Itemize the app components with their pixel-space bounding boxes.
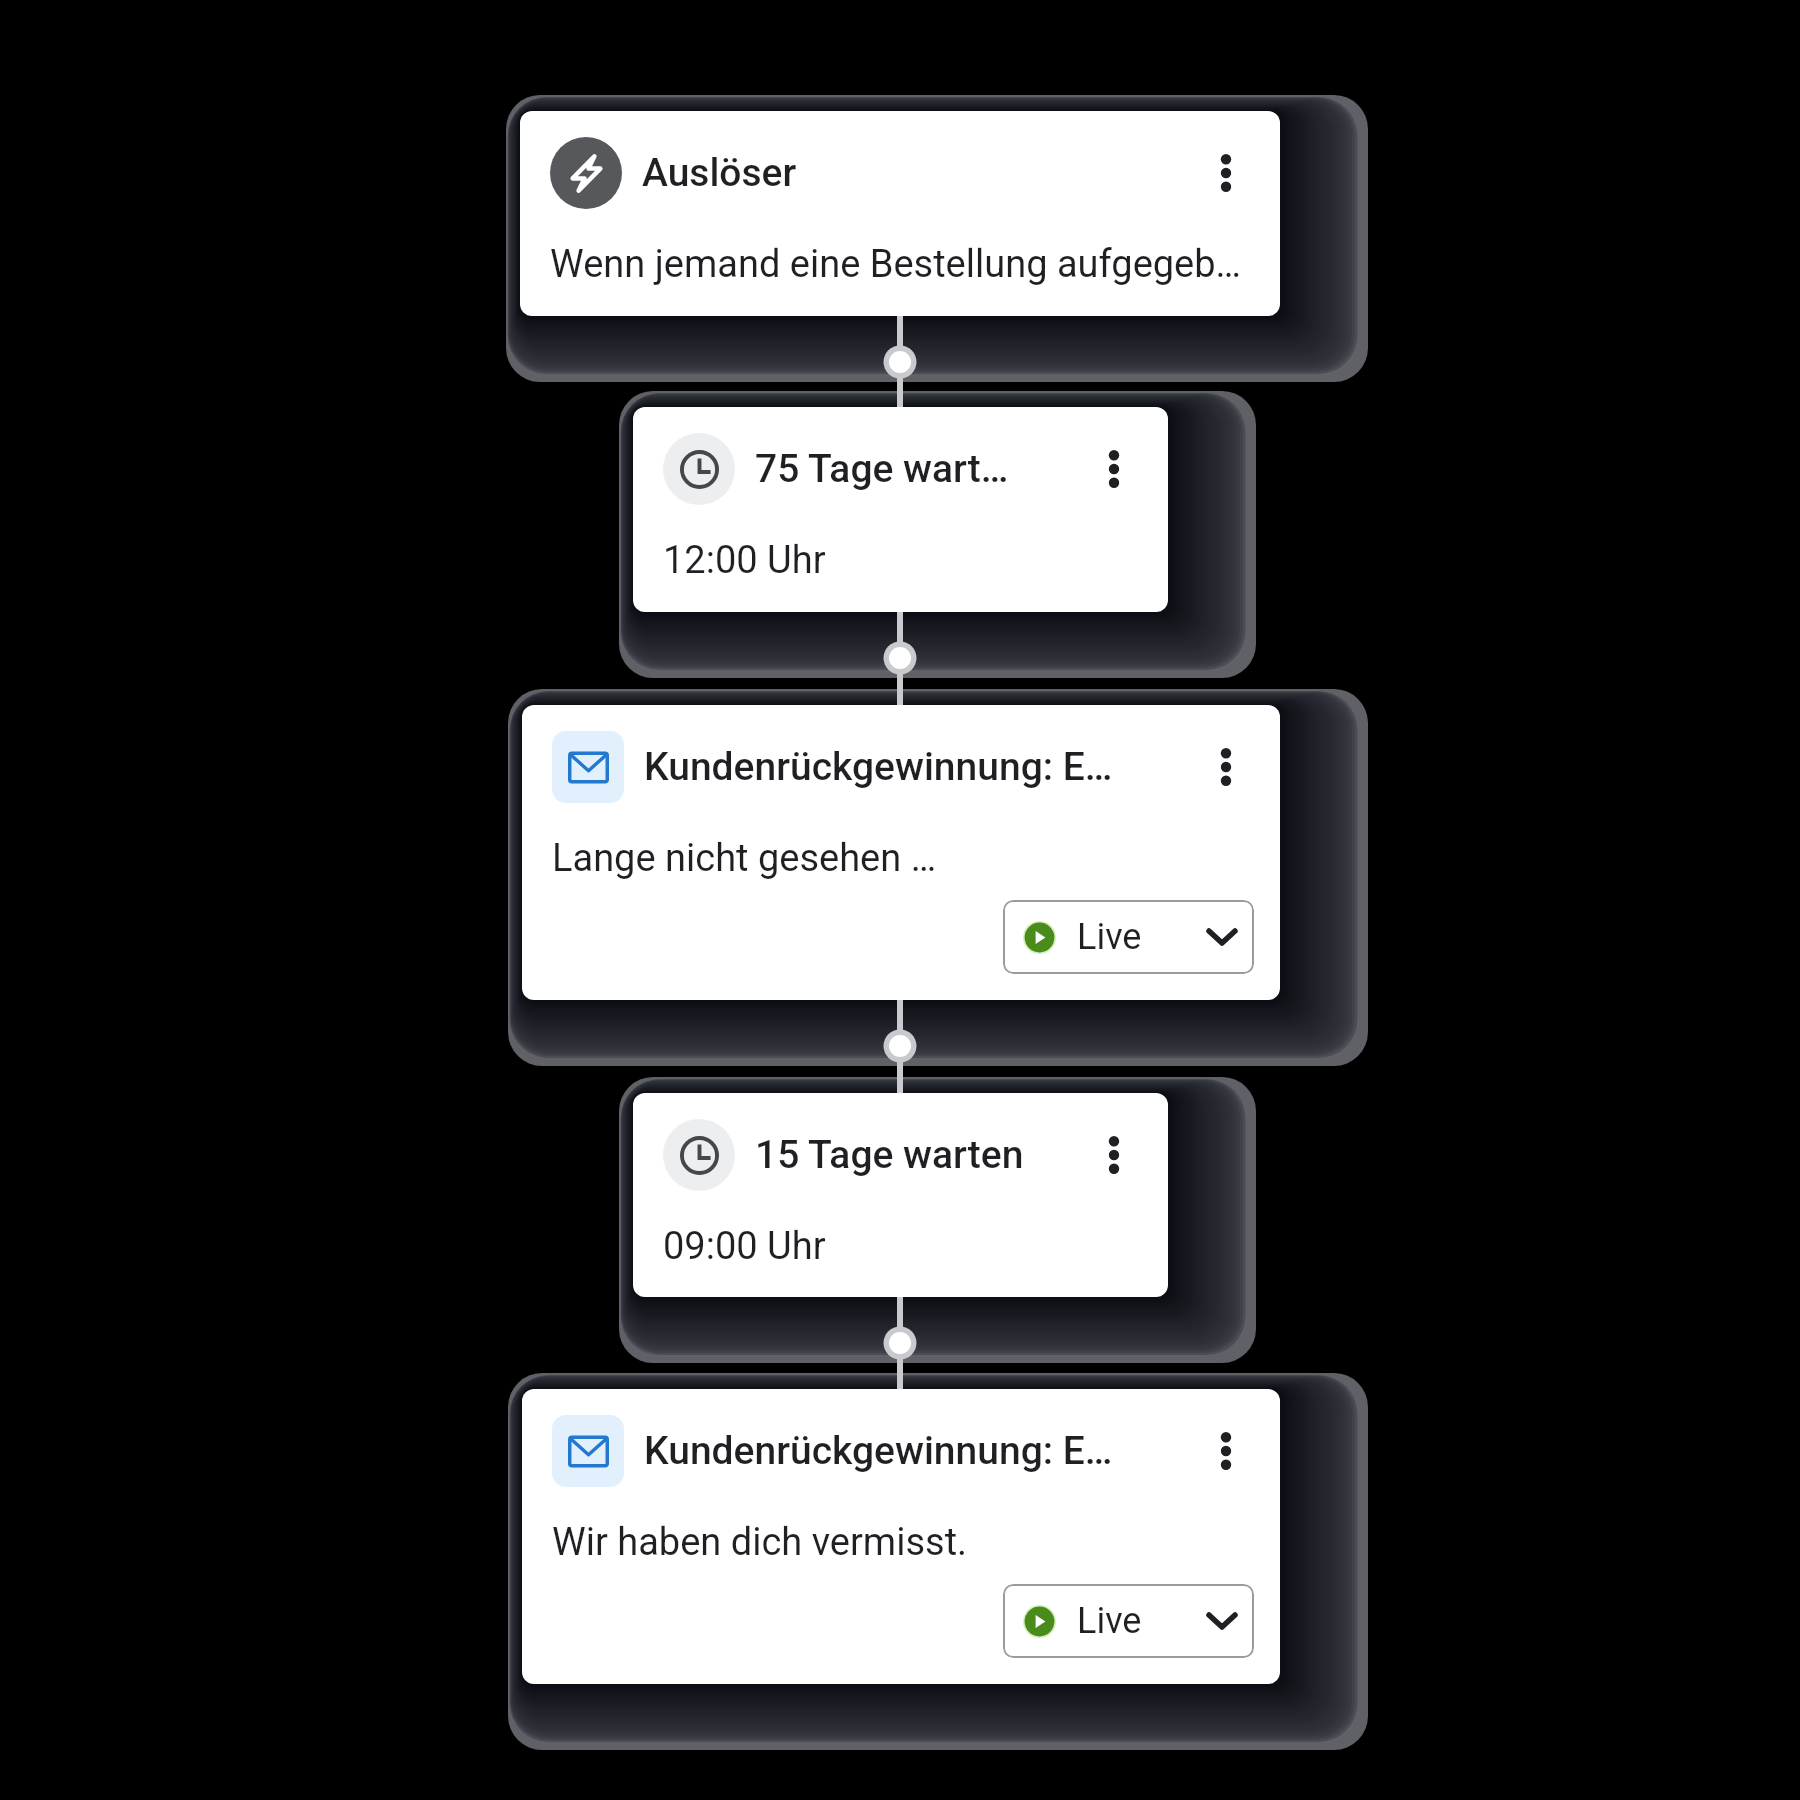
button[interactable]: 75 Tage wart… bbox=[633, 407, 1168, 612]
staticText: Lange nicht gesehen … bbox=[552, 836, 937, 881]
staticText: 12:00 Uhr bbox=[663, 538, 826, 583]
staticText: Wir haben dich vermisst. bbox=[552, 1520, 968, 1565]
button[interactable]: Live bbox=[1003, 1584, 1254, 1658]
staticText: 15 Tage warten bbox=[755, 1132, 1086, 1178]
button[interactable]: More options bbox=[1086, 1127, 1142, 1183]
staticText: Live bbox=[1077, 1600, 1142, 1642]
staticText: Auslöser bbox=[642, 150, 1198, 196]
staticText: Kundenrückgewinnung: E… bbox=[644, 1428, 1198, 1474]
staticText: Wenn jemand eine Bestellung aufgegeb… bbox=[550, 242, 1242, 287]
staticText: 09:00 Uhr bbox=[663, 1224, 826, 1269]
button[interactable]: More options bbox=[1198, 739, 1254, 795]
staticText: Live bbox=[1077, 916, 1142, 958]
button[interactable]: Kundenrückgewinnung: E… bbox=[522, 1389, 1280, 1684]
button[interactable]: 15 Tage warten bbox=[633, 1093, 1168, 1297]
button[interactable]: More options bbox=[1086, 441, 1142, 497]
button[interactable]: Kundenrückgewinnung: E… bbox=[522, 705, 1280, 1000]
staticText: Kundenrückgewinnung: E… bbox=[644, 744, 1198, 790]
button[interactable]: Auslöser bbox=[520, 111, 1280, 316]
button[interactable]: More options bbox=[1198, 1423, 1254, 1479]
staticText: 75 Tage wart… bbox=[755, 446, 1086, 492]
button[interactable]: More options bbox=[1198, 145, 1254, 201]
button[interactable]: Live bbox=[1003, 900, 1254, 974]
